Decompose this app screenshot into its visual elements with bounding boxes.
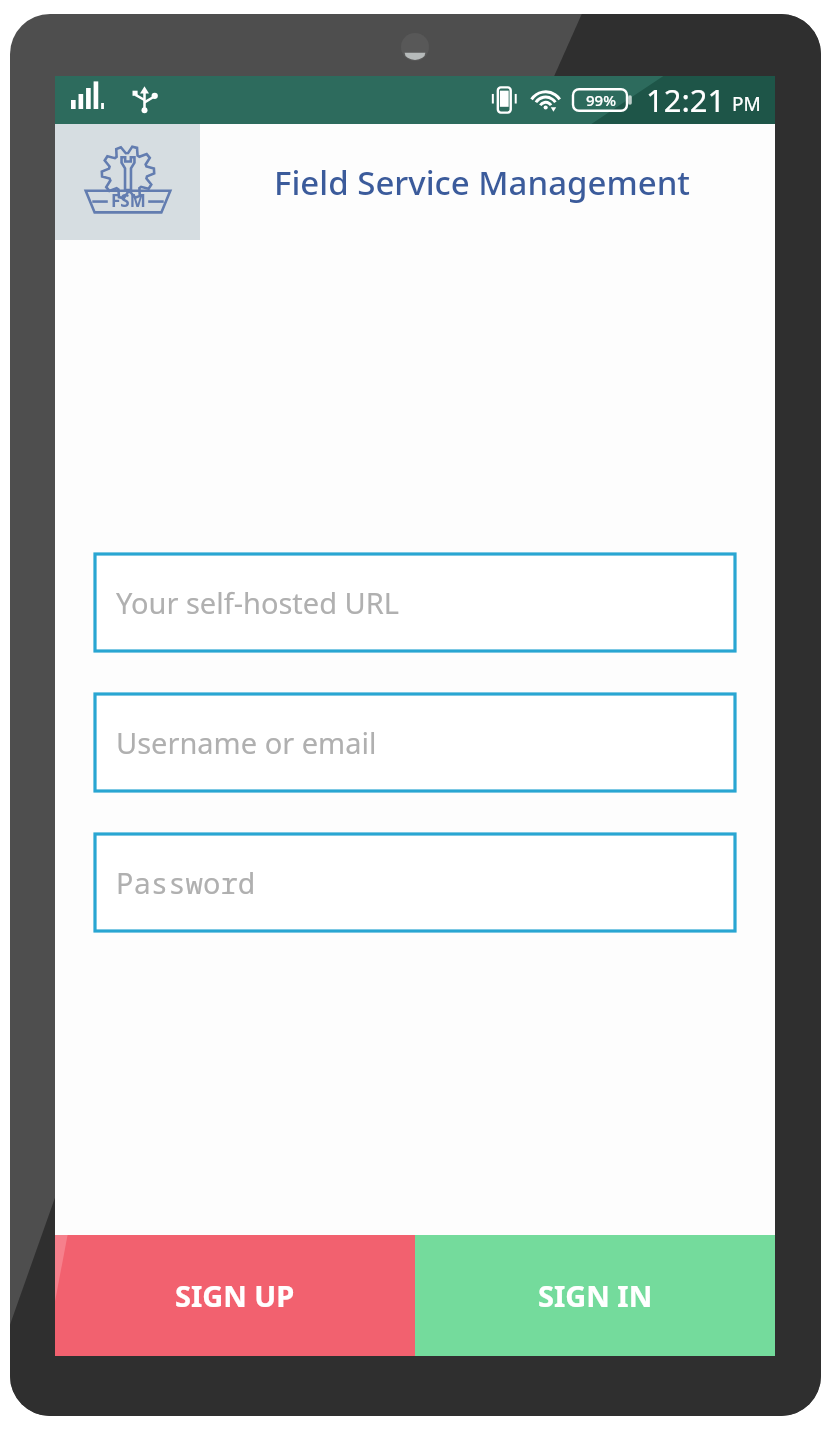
staticText: SIGN IN <box>538 1276 653 1315</box>
button[interactable]: Username or email <box>95 694 735 791</box>
button[interactable]: Your self-hosted URL <box>95 554 735 651</box>
staticText: PM <box>732 91 761 117</box>
staticText: 99% <box>586 90 616 110</box>
staticText: FSM <box>111 189 146 212</box>
staticText: SIGN UP <box>175 1276 295 1315</box>
staticText: 12:21 <box>646 79 726 121</box>
staticText: Your self-hosted URL <box>116 583 399 622</box>
button[interactable]: Password <box>95 834 735 931</box>
staticText: Field Service Management <box>274 160 690 205</box>
button[interactable]: SIGN IN <box>415 1235 775 1356</box>
staticText: Password <box>116 863 256 902</box>
button[interactable]: FSM home logo <box>55 124 200 240</box>
staticText: Username or email <box>116 723 377 762</box>
button[interactable]: SIGN UP <box>55 1235 415 1356</box>
